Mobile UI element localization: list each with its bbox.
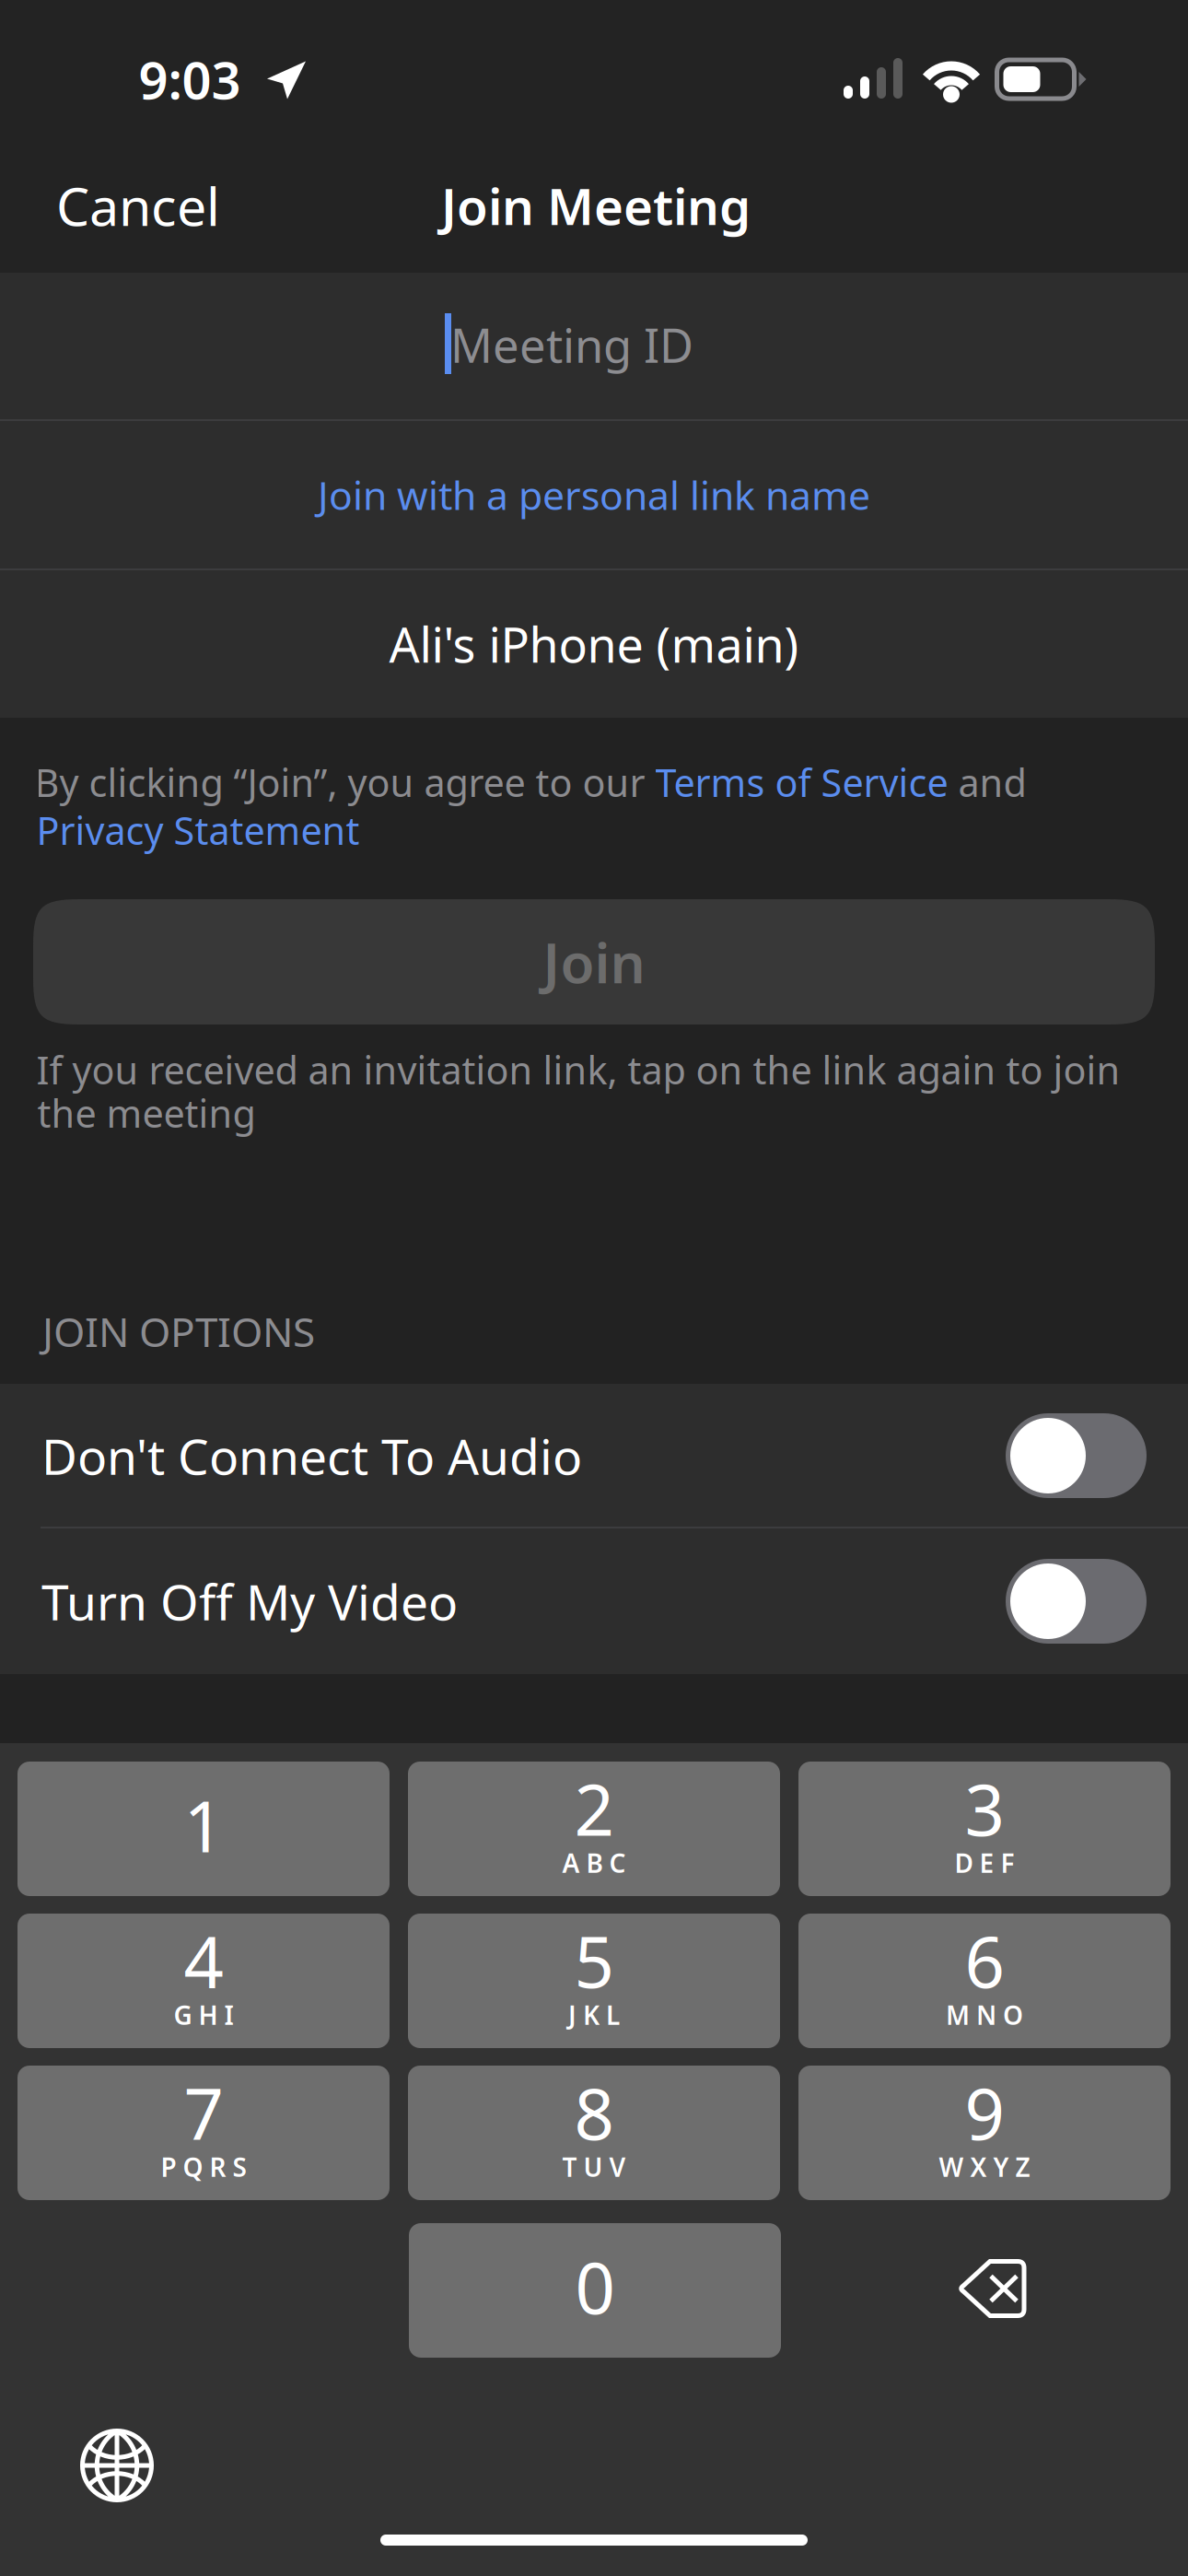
staticText: W X Y Z [939, 2150, 1030, 2184]
staticText: 8 [574, 2066, 614, 2159]
staticText: Join [543, 925, 645, 999]
staticText: 5 [574, 1914, 614, 2007]
button[interactable]: Turn Off My Video [41, 1528, 1147, 1674]
staticText: 3 [965, 1762, 1004, 1855]
button[interactable]: 9 [798, 2066, 1171, 2200]
staticText: Terms of Service [655, 757, 948, 808]
button[interactable]: 8 [408, 2066, 780, 2200]
staticText: 0 [575, 2240, 615, 2333]
staticText: 9:03 [139, 45, 241, 114]
button[interactable]: 1 [17, 1762, 390, 1896]
staticText: If you received an invitation link, tap … [36, 1044, 1120, 1095]
button[interactable]: 5 [408, 1914, 780, 2048]
staticText: 9 [965, 2066, 1004, 2159]
staticText: G H I [174, 1998, 233, 2032]
button[interactable]: 2 [408, 1762, 780, 1896]
staticText: the meeting [37, 1088, 256, 1138]
staticText: Join Meeting [441, 172, 751, 239]
button[interactable]: 3 [798, 1762, 1171, 1896]
staticText: and [948, 757, 1026, 808]
staticText: Ali's iPhone (main) [389, 612, 799, 676]
button[interactable]: 6 [798, 1914, 1171, 2048]
button[interactable]: Keyboard language [79, 2428, 155, 2503]
staticText: P Q R S [161, 2150, 246, 2184]
button[interactable]: 7 [17, 2066, 390, 2200]
button[interactable]: 4 [17, 1914, 390, 2048]
staticText: Don't Connect To Audio [41, 1423, 582, 1488]
button[interactable]: Delete [905, 2221, 1080, 2356]
staticText: A B C [562, 1846, 626, 1880]
staticText: Turn Off My Video [41, 1569, 458, 1634]
staticText: Privacy Statement [36, 805, 360, 855]
staticText: T U V [562, 2150, 626, 2184]
button[interactable]: Join with a personal link name [0, 421, 1188, 568]
staticText: 4 [184, 1914, 223, 2007]
staticText: By clicking “Join”, you agree to our [35, 757, 655, 808]
button[interactable]: Cancel [32, 138, 244, 273]
staticText: M N O [946, 1998, 1023, 2032]
staticText: Join with a personal link name [318, 469, 870, 521]
staticText: J K L [568, 1998, 620, 2032]
button[interactable]: 0 [409, 2223, 781, 2358]
button[interactable]: Don't Connect To Audio [41, 1384, 1147, 1527]
button[interactable]: Join [33, 899, 1155, 1025]
staticText: Meeting ID [450, 314, 693, 376]
staticText: 6 [965, 1914, 1004, 2007]
staticText: 2 [574, 1762, 614, 1855]
staticText: 7 [184, 2066, 223, 2159]
staticText: D E F [955, 1846, 1014, 1880]
staticText: Cancel [56, 170, 220, 240]
staticText: 1 [184, 1779, 223, 1872]
staticText: JOIN OPTIONS [42, 1304, 315, 1358]
